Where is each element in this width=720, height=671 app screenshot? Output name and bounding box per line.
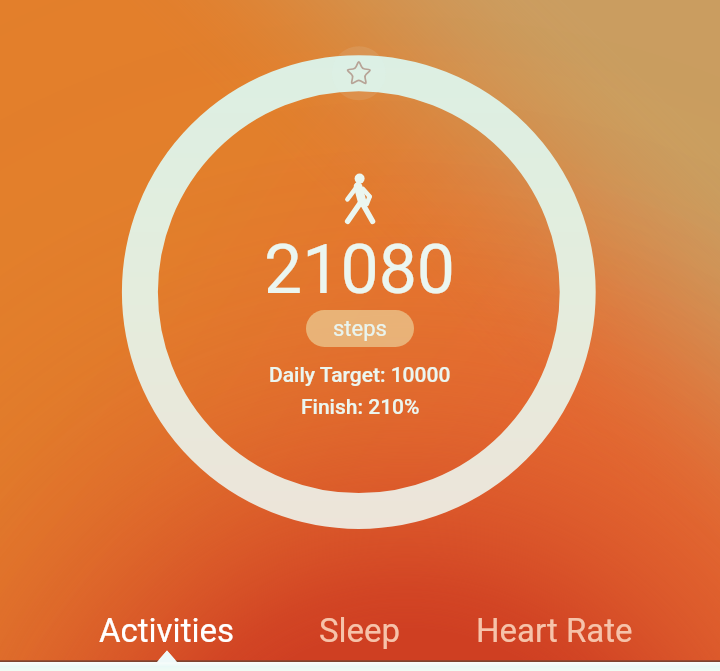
- staticText: Daily Target: 10000: [269, 363, 451, 388]
- staticText: Finish: 210%: [301, 395, 420, 420]
- button[interactable]: Sleep: [260, 594, 460, 666]
- staticText: Heart Rate: [476, 611, 633, 650]
- button[interactable]: Activities: [66, 594, 266, 666]
- staticText: Sleep: [319, 611, 401, 650]
- staticText: 21080: [264, 230, 456, 310]
- button[interactable]: Heart Rate: [454, 594, 654, 666]
- staticText: Activities: [99, 611, 234, 650]
- other: Steps: [345, 172, 375, 224]
- button[interactable]: steps: [306, 310, 414, 347]
- staticText: steps: [333, 316, 387, 342]
